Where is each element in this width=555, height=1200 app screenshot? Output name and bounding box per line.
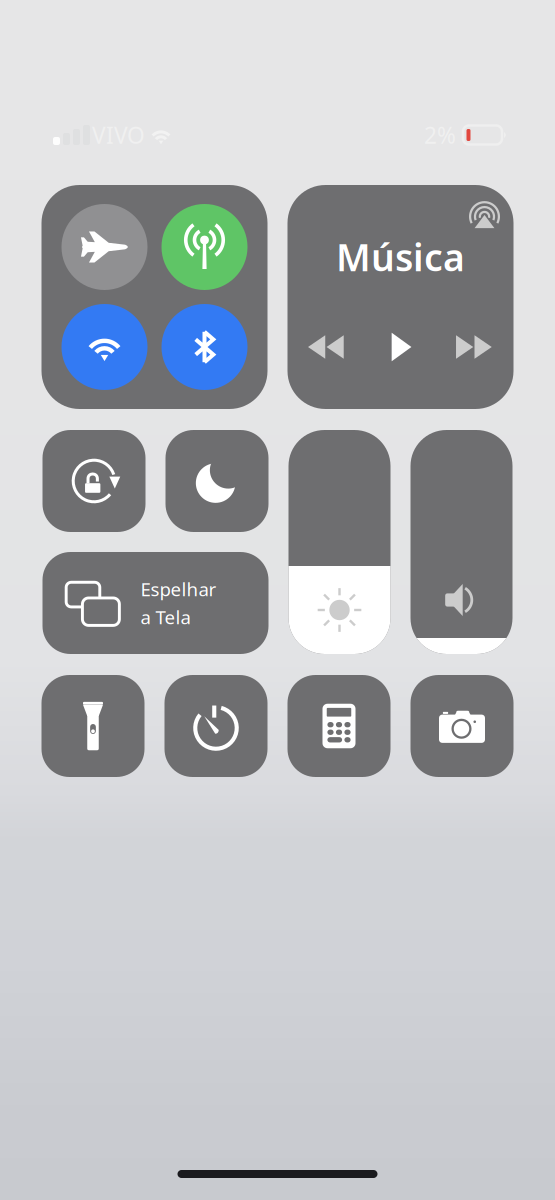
staticText: a Tela <box>140 604 190 629</box>
button[interactable]: Wi-Fi <box>61 304 147 390</box>
button[interactable]: AirPlay <box>462 191 506 235</box>
button[interactable]: Next track <box>446 319 502 375</box>
button[interactable]: Toggle <box>410 675 513 777</box>
staticText: 2% <box>424 120 456 150</box>
button[interactable]: Previous track <box>298 319 354 375</box>
staticText: VIVO <box>92 120 145 150</box>
staticText: Música <box>336 232 465 282</box>
button[interactable]: Toggle <box>165 430 268 532</box>
button[interactable]: Toggle <box>287 675 390 777</box>
button[interactable]: Toggle <box>41 675 144 777</box>
button[interactable]: Bluetooth <box>161 304 247 390</box>
button[interactable]: Volume <box>410 430 512 654</box>
button[interactable]: Brightness <box>288 430 390 654</box>
staticText: Espelhar <box>140 577 216 601</box>
button[interactable]: Play <box>372 319 428 375</box>
button[interactable]: Airplane Mode <box>61 204 147 290</box>
button[interactable]: Espelhar <box>42 552 268 654</box>
button[interactable]: Toggle <box>42 430 145 532</box>
button[interactable]: Cellular Data <box>161 204 247 290</box>
button[interactable]: Toggle <box>164 675 267 777</box>
